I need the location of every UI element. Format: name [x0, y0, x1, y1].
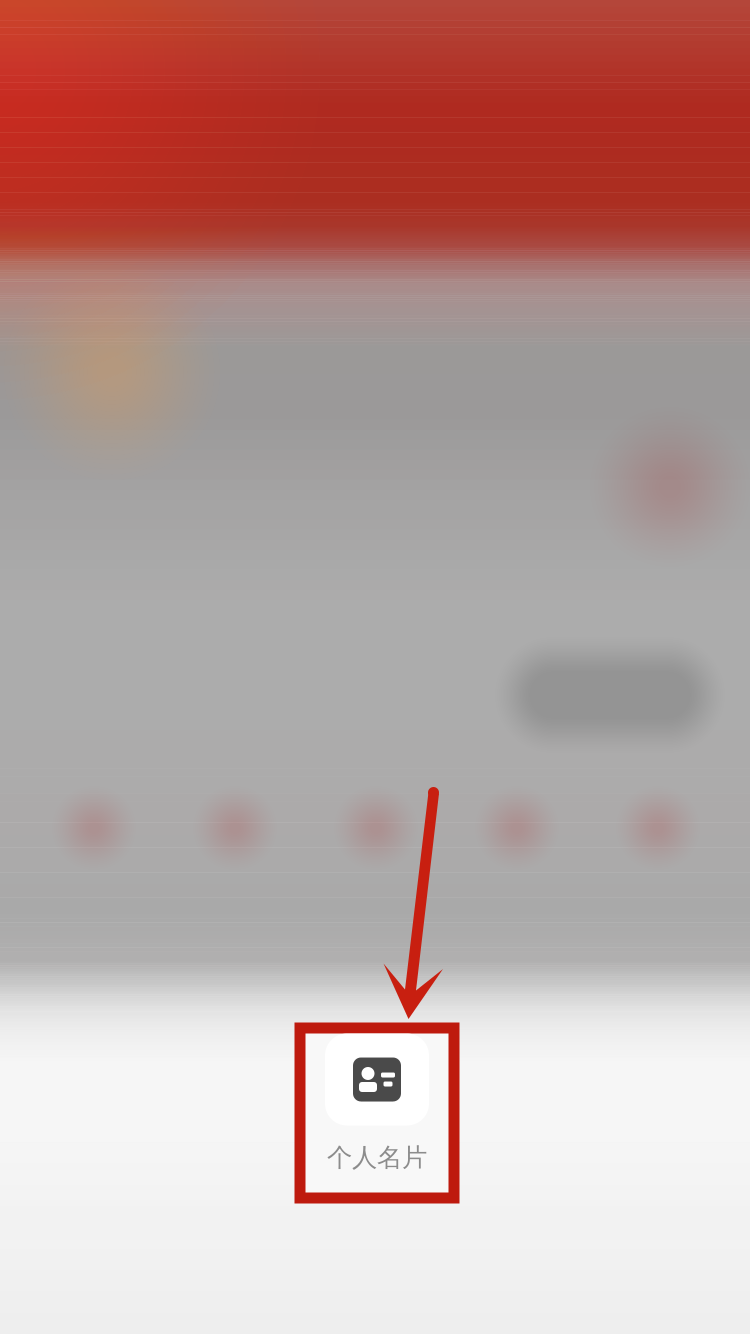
button[interactable]: 个人名片: [305, 1033, 448, 1192]
staticText: 个人名片: [327, 1142, 427, 1173]
